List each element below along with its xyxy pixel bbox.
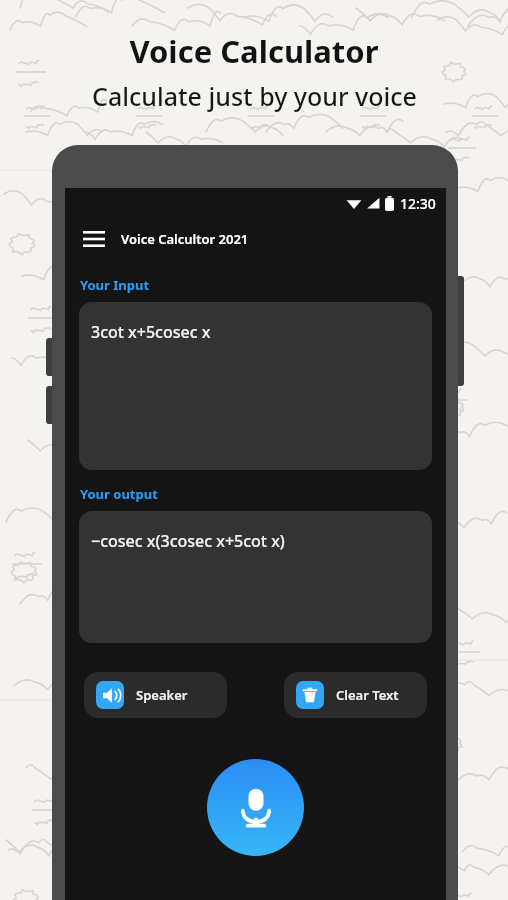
button[interactable]: 3cot x+5cosec x bbox=[79, 302, 432, 470]
staticText: Voice Calcultor 2021 bbox=[121, 230, 249, 248]
button[interactable]: Speaker bbox=[84, 672, 227, 718]
staticText: Clear Text bbox=[336, 686, 399, 704]
staticText: −cosec x(3cosec x+5cot x) bbox=[91, 530, 285, 552]
staticText: Your Input bbox=[80, 276, 150, 294]
button[interactable]: Start voice input bbox=[207, 759, 304, 856]
staticText: 3cot x+5cosec x bbox=[91, 321, 211, 343]
button[interactable]: Clear Text bbox=[284, 672, 427, 718]
staticText: Your output bbox=[80, 485, 158, 503]
button[interactable]: Open navigation menu bbox=[79, 224, 109, 254]
button[interactable]: −cosec x(3cosec x+5cot x) bbox=[79, 511, 432, 643]
staticText: Speaker bbox=[136, 686, 188, 704]
staticText: 12:30 bbox=[400, 194, 436, 213]
staticText: Voice Calculator bbox=[129, 30, 379, 72]
staticText: Calculate just by your voice bbox=[92, 79, 417, 113]
